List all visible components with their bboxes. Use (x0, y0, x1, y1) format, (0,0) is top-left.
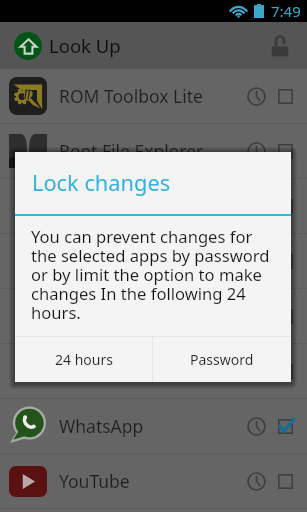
button[interactable]: Select app (271, 349, 300, 393)
staticText: 24 hours (55, 350, 113, 369)
staticText: 7:49 (271, 1, 301, 21)
button[interactable]: Select app (271, 129, 300, 173)
button[interactable]: Schedule (241, 239, 271, 283)
button[interactable]: Schedule (241, 349, 271, 393)
button[interactable]: Select app (271, 239, 300, 283)
button[interactable]: Schedule (241, 184, 271, 228)
button[interactable]: Schedule (0, 234, 307, 288)
button[interactable]: Schedule (0, 179, 307, 233)
button[interactable]: Schedule (241, 129, 271, 173)
button[interactable]: Select app (271, 459, 300, 503)
button[interactable]: Lock (262, 28, 298, 64)
button[interactable]: Schedule (241, 459, 271, 503)
staticText: WhatsApp (59, 414, 144, 438)
button[interactable]: Schedule (241, 404, 271, 448)
staticText: ROM Toolbox Lite (59, 84, 203, 108)
button[interactable]: ROM Toolbox Lite (0, 69, 307, 123)
button[interactable]: Schedule (241, 74, 271, 118)
staticText: You can prevent changes for the selected… (31, 225, 275, 324)
staticText: Password (190, 350, 254, 369)
button[interactable]: Schedule (0, 344, 307, 398)
button[interactable]: Schedule (0, 289, 307, 343)
button[interactable]: Select app (271, 294, 300, 338)
button[interactable]: Schedule (241, 294, 271, 338)
button[interactable]: 24 hours (15, 337, 152, 382)
button[interactable]: Select app (271, 404, 300, 448)
button[interactable]: WhatsApp (0, 399, 307, 453)
staticText: YouTube (59, 469, 130, 493)
staticText: Look Up (49, 33, 121, 58)
button[interactable]: Select app (271, 184, 300, 228)
staticText: Lock changes (32, 168, 171, 198)
button[interactable]: Root File Explorer (0, 124, 307, 178)
button[interactable]: Password (153, 337, 291, 382)
button[interactable]: YouTube (0, 454, 307, 508)
staticText: Root File Explorer (59, 139, 204, 163)
button[interactable]: Select app (271, 74, 300, 118)
